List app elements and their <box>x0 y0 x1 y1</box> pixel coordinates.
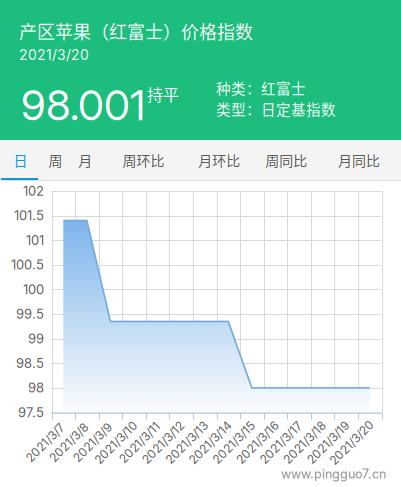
staticText: 2021/3/17 <box>254 435 308 450</box>
button[interactable]: 周同比 <box>260 140 312 180</box>
staticText: 101.5 <box>14 208 44 223</box>
staticText: 2021/3/13 <box>160 435 214 450</box>
staticText: 2021/3/20 <box>323 435 380 450</box>
staticText: 周 <box>48 150 62 170</box>
staticText: 100 <box>23 282 44 297</box>
staticText: 类型：日定基指数 <box>216 98 336 119</box>
staticText: 98.001 <box>21 80 145 130</box>
staticText: 102 <box>23 183 44 199</box>
staticText: 日 <box>13 150 27 170</box>
staticText: 101 <box>26 232 44 248</box>
staticText: 月 <box>78 150 92 170</box>
button[interactable]: 月环比 <box>193 140 245 180</box>
staticText: 99 <box>28 331 44 346</box>
button[interactable]: 周 <box>37 140 73 180</box>
staticText: 2021/3/16 <box>230 435 284 450</box>
staticText: www.pingguo7.cn <box>281 466 386 481</box>
staticText: 周环比 <box>122 150 164 170</box>
staticText: 周同比 <box>265 150 307 170</box>
button[interactable]: 周环比 <box>117 140 169 180</box>
button[interactable]: 月同比 <box>333 140 385 180</box>
staticText: 98 <box>28 380 44 396</box>
button[interactable]: 月 <box>67 140 103 180</box>
staticText: 97.5 <box>18 405 44 420</box>
staticText: 2021/3/11 <box>114 435 166 450</box>
staticText: 2021/3/12 <box>136 435 190 450</box>
staticText: 持平 <box>147 82 179 106</box>
staticText: 2021/3/7 <box>21 435 70 450</box>
staticText: 2021/3/10 <box>88 435 143 450</box>
staticText: 2021/3/8 <box>44 435 93 450</box>
staticText: 2021/3/14 <box>183 435 238 450</box>
staticText: 2021/3/9 <box>68 435 117 450</box>
staticText: 产区苹果（红富士）价格指数 <box>19 18 253 44</box>
staticText: 2021/3/19 <box>301 435 355 450</box>
staticText: 98.5 <box>16 355 44 371</box>
staticText: 99.5 <box>16 306 44 322</box>
staticText: 2021/3/18 <box>278 435 332 450</box>
button[interactable]: 日 <box>2 140 38 180</box>
staticText: 2021/3/15 <box>207 435 261 450</box>
staticText: 种类：红富士 <box>216 77 306 98</box>
staticText: 月环比 <box>198 150 240 170</box>
staticText: 月同比 <box>338 150 380 170</box>
staticText: 100.5 <box>11 257 44 273</box>
staticText: 2021/3/20 <box>19 46 89 63</box>
